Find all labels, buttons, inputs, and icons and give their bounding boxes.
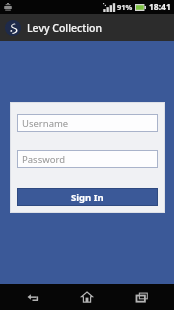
- staticText: Sign In: [71, 191, 104, 204]
- staticText: 91%: [117, 2, 133, 12]
- button[interactable]: Recent apps: [120, 284, 164, 310]
- button[interactable]: Password: [17, 150, 158, 168]
- button[interactable]: Username: [17, 114, 158, 132]
- button[interactable]: Sign In: [17, 188, 158, 206]
- button[interactable]: Home: [65, 284, 109, 310]
- staticText: Username: [22, 117, 69, 130]
- staticText: Levy Collection: [27, 21, 103, 35]
- staticText: Password: [22, 153, 65, 166]
- button[interactable]: Levy Collection logo: [5, 20, 21, 36]
- button[interactable]: Back: [11, 284, 55, 310]
- staticText: 18:41: [149, 1, 171, 13]
